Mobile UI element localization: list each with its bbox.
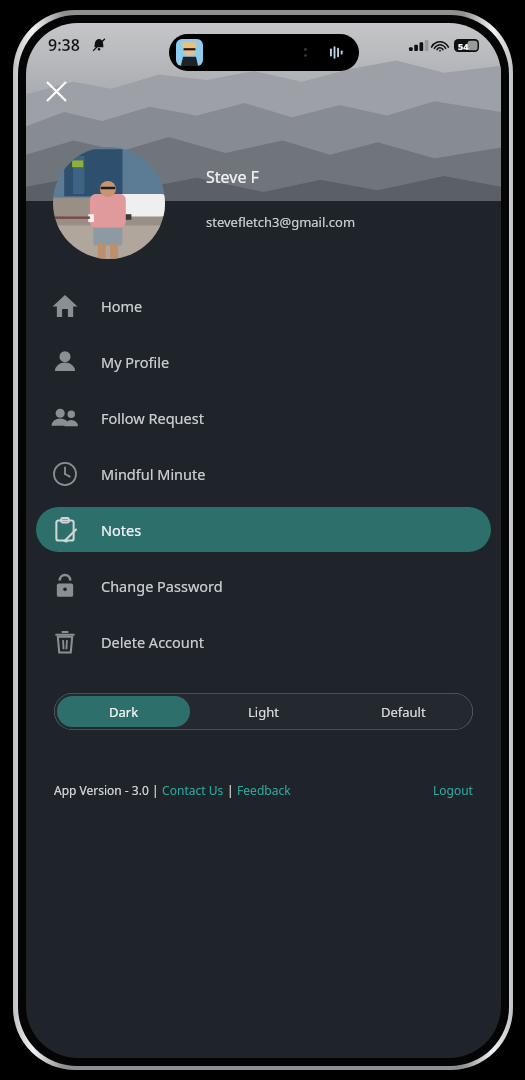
button[interactable]: Light: [193, 693, 333, 730]
button[interactable]: Follow Request: [36, 395, 491, 440]
staticText: Mindful Minute: [101, 464, 206, 484]
staticText: Change Password: [101, 576, 223, 596]
staticText: Contact Us: [159, 782, 227, 798]
staticText: |: [227, 782, 234, 798]
staticText: |: [152, 782, 159, 798]
button[interactable]: Logout: [433, 782, 473, 798]
staticText: stevefletch3@gmail.com: [206, 213, 356, 231]
staticText: 54: [458, 40, 469, 52]
staticText: My Profile: [101, 352, 170, 372]
staticText: Default: [381, 703, 426, 721]
button[interactable]: Feedback: [234, 782, 291, 798]
button[interactable]: My Profile: [36, 339, 491, 384]
button[interactable]: Profile photo: [53, 147, 165, 259]
button[interactable]: Change Password: [36, 563, 491, 608]
button[interactable]: Dark: [57, 696, 190, 727]
button[interactable]: Default: [333, 693, 473, 730]
staticText: Steve F: [206, 166, 259, 188]
button[interactable]: Delete Account: [36, 619, 491, 664]
staticText: Notes: [101, 520, 142, 540]
staticText: 9:38: [48, 34, 80, 56]
staticText: Home: [101, 296, 143, 316]
button[interactable]: Home: [36, 283, 491, 328]
staticText: Dark: [109, 703, 139, 721]
staticText: Delete Account: [101, 632, 204, 652]
staticText: Feedback: [234, 782, 291, 798]
staticText: App Version - 3.0: [54, 782, 152, 798]
button[interactable]: Mindful Minute: [36, 451, 491, 496]
button[interactable]: Contact Us: [159, 782, 227, 798]
button[interactable]: Notes: [36, 507, 491, 552]
staticText: Light: [248, 703, 279, 721]
button[interactable]: Close: [36, 71, 76, 111]
staticText: Follow Request: [101, 408, 204, 428]
staticText: Logout: [433, 782, 473, 798]
